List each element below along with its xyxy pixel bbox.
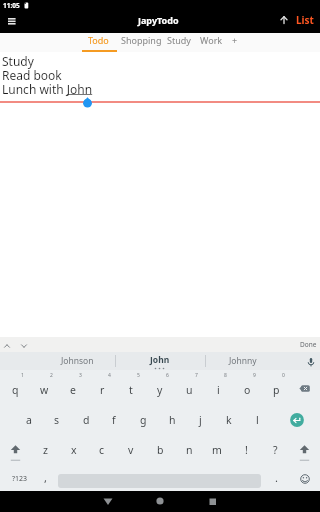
button[interactable]: l	[243, 405, 271, 434]
staticText: g	[140, 413, 147, 427]
button[interactable]: p	[262, 375, 290, 404]
button[interactable]: r	[88, 375, 116, 404]
button[interactable]: ?	[261, 435, 289, 464]
staticText: r	[100, 383, 105, 397]
button[interactable]: o	[233, 375, 261, 404]
staticText: 5	[137, 372, 140, 379]
button[interactable]	[282, 405, 312, 434]
staticText: d	[83, 413, 90, 427]
button[interactable]: z	[31, 435, 59, 464]
staticText: m	[212, 443, 222, 457]
staticText: JapyTodo	[138, 14, 179, 26]
staticText: o	[244, 383, 251, 397]
staticText: Read book	[2, 67, 62, 83]
staticText: w	[40, 383, 49, 397]
button[interactable]	[290, 436, 319, 465]
staticText: e	[70, 383, 76, 397]
staticText: b	[157, 443, 164, 457]
button[interactable]	[0, 337, 16, 352]
button[interactable]: Done	[300, 340, 317, 349]
button[interactable]: g	[129, 405, 157, 434]
staticText: n	[186, 443, 193, 457]
button[interactable]	[82, 33, 117, 52]
staticText: 6	[166, 372, 169, 379]
staticText: 11:05	[3, 1, 20, 10]
staticText: Study	[2, 53, 34, 69]
staticText: 4	[108, 372, 111, 379]
button[interactable]: c	[88, 435, 116, 464]
button[interactable]: w	[30, 375, 58, 404]
button[interactable]: s	[43, 405, 71, 434]
button[interactable]: John	[120, 351, 200, 369]
staticText: Todo	[88, 34, 109, 46]
button[interactable]: ,	[37, 464, 53, 491]
button[interactable]	[200, 491, 224, 512]
button[interactable]: .	[268, 464, 284, 491]
button[interactable]: n	[175, 435, 203, 464]
staticText: v	[128, 443, 134, 457]
button[interactable]	[290, 465, 319, 492]
button[interactable]	[302, 353, 318, 370]
button[interactable]: q	[1, 375, 29, 404]
button[interactable]: d	[72, 405, 100, 434]
button[interactable]: e	[59, 375, 87, 404]
staticText: John	[150, 354, 170, 366]
staticText: ?123	[12, 474, 28, 484]
button[interactable]: Shopping	[121, 34, 162, 46]
staticText: Johnson	[61, 355, 94, 367]
button[interactable]	[290, 374, 319, 403]
button[interactable]: u	[175, 375, 203, 404]
staticText: 8	[224, 372, 227, 379]
staticText: k	[226, 413, 232, 427]
button[interactable]: f	[100, 405, 128, 434]
staticText: List	[296, 13, 314, 27]
button[interactable]: j	[186, 405, 214, 434]
button[interactable]: Johnny	[203, 352, 283, 370]
button[interactable]: a	[15, 405, 43, 434]
staticText: 2	[50, 372, 53, 379]
staticText: Johnny	[229, 355, 257, 367]
button[interactable]: m	[203, 435, 231, 464]
button[interactable]: ?123	[2, 465, 38, 492]
staticText: 0	[282, 372, 285, 379]
button[interactable]: i	[204, 375, 232, 404]
staticText: z	[43, 443, 48, 457]
staticText: c	[99, 443, 105, 457]
button[interactable]	[17, 337, 33, 352]
button[interactable]	[1, 436, 30, 465]
button[interactable]: Johnson	[32, 352, 122, 370]
staticText: q	[12, 383, 19, 397]
button[interactable]: y	[146, 375, 174, 404]
staticText: x	[71, 443, 77, 457]
button[interactable]: v	[117, 435, 145, 464]
button[interactable]: List	[278, 10, 320, 28]
button[interactable]: b	[146, 435, 174, 464]
button[interactable]	[96, 491, 120, 512]
staticText: s	[54, 413, 60, 427]
staticText: f	[112, 413, 116, 427]
button[interactable]: Study	[167, 34, 191, 46]
button[interactable]: t	[117, 375, 145, 404]
staticText: !	[245, 443, 248, 457]
staticText: .	[275, 470, 278, 485]
staticText: 7	[195, 372, 198, 379]
staticText: p	[273, 383, 280, 397]
button[interactable]: Lunch with John	[2, 81, 93, 97]
staticText: 1	[21, 372, 24, 379]
button[interactable]: !	[232, 435, 260, 464]
staticText: j	[199, 413, 202, 427]
staticText: i	[217, 383, 220, 397]
button[interactable]: h	[158, 405, 186, 434]
button[interactable]: x	[60, 435, 88, 464]
staticText: 9	[253, 372, 256, 379]
button[interactable]: Work	[200, 34, 223, 46]
staticText: h	[169, 413, 176, 427]
staticText: l	[256, 413, 259, 427]
button[interactable]: +	[232, 34, 238, 46]
button[interactable]	[2, 12, 22, 30]
staticText: y	[157, 383, 163, 397]
button[interactable]	[148, 491, 172, 512]
button[interactable]: k	[215, 405, 243, 434]
staticText: ,	[44, 470, 47, 485]
